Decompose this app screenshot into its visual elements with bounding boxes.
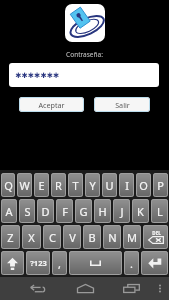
- staticText: ✱✱✱✱✱✱✱: [15, 71, 59, 80]
- staticText: V: [69, 230, 76, 245]
- staticText: Q: [4, 178, 13, 193]
- button[interactable]: Home: [69, 277, 101, 300]
- button[interactable]: K: [132, 199, 149, 223]
- button[interactable]: T: [68, 173, 83, 197]
- staticText: K: [137, 204, 144, 219]
- button[interactable]: ✱✱✱✱✱✱✱: [9, 63, 159, 87]
- staticText: A: [5, 204, 13, 219]
- staticText: P: [157, 178, 164, 193]
- button[interactable]: .: [124, 251, 139, 275]
- staticText: S: [24, 204, 31, 219]
- button[interactable]: Salir: [94, 97, 150, 112]
- staticText: H: [98, 204, 107, 219]
- button[interactable]: SHIFT: [1, 251, 24, 275]
- staticText: Aceptar: [38, 100, 65, 110]
- staticText: I: [125, 178, 129, 193]
- button[interactable]: ,: [52, 251, 67, 275]
- staticText: Contraseña:: [66, 50, 103, 59]
- staticText: L: [157, 204, 163, 219]
- button[interactable]: Y: [85, 173, 100, 197]
- button[interactable]: G: [75, 199, 92, 223]
- button[interactable]: U: [102, 173, 117, 197]
- button[interactable]: Q: [1, 173, 15, 197]
- button[interactable]: V: [63, 225, 81, 249]
- staticText: D: [41, 204, 50, 219]
- staticText: DEL: [152, 230, 161, 236]
- staticText: U: [105, 178, 114, 193]
- staticText: T: [72, 178, 79, 193]
- button[interactable]: E: [34, 173, 49, 197]
- button[interactable]: ?123: [26, 251, 50, 275]
- staticText: N: [108, 230, 117, 245]
- button[interactable]: DEL: [143, 225, 168, 249]
- button[interactable]: M: [123, 225, 141, 249]
- button[interactable]: B: [83, 225, 101, 249]
- button[interactable]: C: [43, 225, 61, 249]
- button[interactable]: L: [151, 199, 168, 223]
- button[interactable]: S: [19, 199, 35, 223]
- button[interactable]: SPACE: [69, 251, 122, 275]
- staticText: G: [79, 204, 88, 219]
- staticText: Z: [7, 230, 14, 245]
- button[interactable]: J: [113, 199, 130, 223]
- button[interactable]: A: [1, 199, 17, 223]
- button[interactable]: I: [119, 173, 134, 197]
- button[interactable]: Z: [1, 225, 20, 249]
- staticText: B: [88, 230, 96, 245]
- button[interactable]: R: [51, 173, 66, 197]
- button[interactable]: H: [94, 199, 111, 223]
- staticText: .: [130, 256, 133, 271]
- button[interactable]: P: [153, 173, 168, 197]
- button[interactable]: W: [17, 173, 32, 197]
- button[interactable]: D: [37, 199, 54, 223]
- button[interactable]: X: [22, 225, 41, 249]
- button[interactable]: Aceptar: [19, 97, 84, 112]
- staticText: J: [120, 204, 124, 219]
- staticText: M: [127, 230, 137, 245]
- button[interactable]: F: [56, 199, 73, 223]
- button[interactable]: N: [103, 225, 121, 249]
- staticText: Y: [89, 178, 96, 193]
- button[interactable]: Menu: [149, 277, 169, 300]
- button[interactable]: Back: [20, 277, 52, 300]
- staticText: R: [55, 178, 62, 193]
- staticText: E: [38, 178, 45, 193]
- staticText: O: [139, 178, 148, 193]
- button[interactable]: ENTER: [141, 251, 168, 275]
- button[interactable]: O: [136, 173, 151, 197]
- staticText: W: [19, 178, 30, 193]
- button[interactable]: Recents: [115, 277, 147, 300]
- staticText: Salir: [115, 100, 130, 110]
- staticText: ,: [58, 256, 61, 271]
- staticText: F: [62, 204, 68, 219]
- staticText: X: [28, 230, 35, 245]
- staticText: ?123: [30, 258, 47, 268]
- staticText: C: [49, 230, 56, 245]
